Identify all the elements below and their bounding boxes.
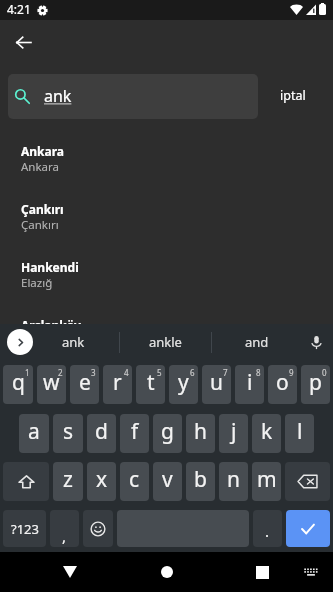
staticText: Çankırı: [21, 217, 59, 233]
staticText: 0: [322, 367, 327, 378]
button[interactable]: ,: [50, 510, 79, 547]
button[interactable]: p: [301, 365, 330, 404]
button[interactable]: m: [252, 462, 281, 501]
button[interactable]: d: [87, 414, 116, 453]
staticText: d: [95, 417, 108, 446]
staticText: x: [96, 465, 108, 494]
button[interactable]: u: [202, 365, 231, 404]
button[interactable]: Arslanköy: [0, 299, 333, 357]
button[interactable]: i: [235, 365, 264, 404]
staticText: ank: [44, 85, 72, 107]
staticText: 1: [25, 367, 30, 378]
button[interactable]: j: [219, 414, 248, 453]
staticText: w: [43, 368, 60, 397]
button[interactable]: Switch keyboard: [291, 552, 331, 592]
button[interactable]: e: [70, 365, 99, 404]
button[interactable]: Ankara: [0, 125, 333, 183]
staticText: Hankendi: [21, 259, 79, 275]
staticText: Mersin: [21, 333, 59, 349]
button[interactable]: ank: [8, 74, 258, 119]
button[interactable]: Emoji: [83, 510, 113, 547]
staticText: iptal: [280, 87, 306, 104]
button[interactable]: Recents: [234, 552, 290, 592]
staticText: .: [265, 521, 270, 541]
button[interactable]: q: [3, 365, 33, 404]
button[interactable]: h: [186, 414, 215, 453]
button[interactable]: Backspace: [285, 462, 330, 501]
staticText: g: [161, 417, 174, 446]
button[interactable]: o: [268, 365, 297, 404]
staticText: r: [113, 368, 122, 397]
staticText: c: [129, 465, 140, 494]
button[interactable]: f: [120, 414, 149, 453]
staticText: l: [297, 417, 303, 446]
staticText: 5: [157, 367, 162, 378]
staticText: ankle: [149, 333, 182, 351]
button[interactable]: ankle: [119, 324, 211, 364]
staticText: a: [28, 417, 40, 446]
button[interactable]: Back: [7, 26, 39, 58]
button[interactable]: n: [219, 462, 248, 501]
staticText: 4: [124, 367, 129, 378]
staticText: y: [178, 368, 189, 397]
button[interactable]: g: [153, 414, 182, 453]
staticText: e: [79, 368, 91, 397]
button[interactable]: x: [87, 462, 116, 501]
button[interactable]: z: [53, 462, 83, 501]
button[interactable]: r: [103, 365, 132, 404]
button[interactable]: ank: [28, 324, 119, 364]
staticText: b: [194, 465, 207, 494]
staticText: p: [309, 368, 322, 397]
staticText: ank: [62, 333, 85, 351]
staticText: k: [261, 417, 273, 446]
button[interactable]: v: [153, 462, 182, 501]
staticText: 7: [223, 367, 228, 378]
staticText: Ankara: [21, 159, 60, 175]
staticText: n: [227, 465, 240, 494]
button[interactable]: Home: [139, 552, 195, 592]
button[interactable]: l: [285, 414, 314, 453]
staticText: ?123: [11, 520, 39, 538]
staticText: o: [276, 368, 289, 397]
button[interactable]: s: [53, 414, 83, 453]
staticText: i: [247, 368, 253, 397]
button[interactable]: More suggestions: [7, 329, 33, 355]
button[interactable]: a: [19, 414, 49, 453]
staticText: f: [131, 417, 139, 446]
staticText: Çankırı: [21, 201, 64, 217]
button[interactable]: w: [37, 365, 66, 404]
button[interactable]: Shift: [3, 462, 49, 501]
button[interactable]: and: [211, 324, 303, 364]
staticText: q: [12, 368, 25, 397]
button[interactable]: c: [120, 462, 149, 501]
staticText: t: [147, 368, 155, 397]
staticText: m: [257, 465, 277, 494]
staticText: u: [210, 368, 223, 397]
staticText: Elazığ: [21, 275, 53, 291]
button[interactable]: Voice input: [304, 330, 328, 354]
staticText: and: [245, 333, 269, 351]
staticText: Arslanköy: [21, 317, 81, 333]
button[interactable]: iptal: [258, 74, 327, 119]
staticText: v: [162, 465, 173, 494]
button[interactable]: Hide keyboard: [42, 552, 98, 592]
staticText: s: [63, 417, 74, 446]
staticText: 9: [289, 367, 294, 378]
staticText: 3: [91, 367, 96, 378]
staticText: 8: [256, 367, 261, 378]
button[interactable]: Çankırı: [0, 183, 333, 241]
button[interactable]: y: [169, 365, 198, 404]
staticText: 2: [58, 367, 63, 378]
button[interactable]: b: [186, 462, 215, 501]
button[interactable]: .: [253, 510, 282, 547]
button[interactable]: Enter: [286, 510, 330, 547]
button[interactable]: k: [252, 414, 281, 453]
button[interactable]: t: [136, 365, 165, 404]
staticText: 6: [190, 367, 195, 378]
staticText: z: [63, 465, 73, 494]
staticText: h: [194, 417, 207, 446]
button[interactable]: ?123: [3, 510, 46, 547]
staticText: ,: [62, 526, 67, 546]
button[interactable]: Hankendi: [0, 241, 333, 299]
